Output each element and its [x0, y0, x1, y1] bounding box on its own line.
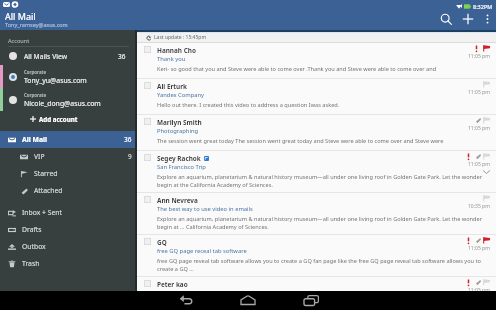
button[interactable]: Compose new mail [457, 9, 479, 29]
staticText: Inbox + Sent [22, 208, 135, 217]
button[interactable]: Add account [0, 111, 135, 127]
staticText: Marilyn Smith [157, 118, 202, 127]
staticText: GQ [157, 238, 167, 247]
staticText: 11:05 pm [468, 161, 490, 168]
button[interactable]: Hannah Cho [137, 43, 496, 79]
button[interactable]: Drafts [0, 221, 135, 238]
staticText: All Mails View [24, 52, 118, 61]
button[interactable]: Trash [0, 255, 135, 272]
staticText: 11:05 pm [468, 125, 490, 132]
staticText: Segey Rachok [157, 154, 201, 163]
button[interactable]: Home [228, 291, 268, 310]
staticText: free GQ page reveal tab software allows … [157, 257, 492, 273]
button[interactable]: VIP [0, 148, 135, 165]
staticText: Keri- so good that you and Steve were ab… [157, 65, 450, 73]
staticText: Starred [34, 169, 135, 178]
staticText: free GQ page receal tab software [157, 247, 247, 257]
staticText: Attached [34, 186, 135, 195]
button[interactable]: Attached [0, 182, 135, 199]
staticText: Drafts [22, 225, 135, 234]
button[interactable]: Search [435, 9, 457, 29]
button[interactable]: All Mails View [0, 47, 135, 65]
staticText: 36 [124, 135, 132, 144]
staticText: Ann Nevreva [157, 196, 198, 205]
staticText: Trash [22, 259, 135, 268]
staticText: Photographing [157, 127, 199, 137]
staticText: Peter kao [157, 280, 188, 289]
staticText: All Mail [5, 10, 36, 22]
staticText: Nicole_dong@asus.com [24, 99, 101, 108]
staticText: 11:05 pm [468, 245, 490, 252]
button[interactable]: Ali Erturk [137, 79, 496, 115]
staticText: Tony_ramsey@asus.com [5, 21, 68, 28]
button[interactable]: Ann Nevreva [137, 193, 496, 235]
staticText: Hello out there. I created this video to… [157, 101, 340, 109]
button[interactable]: Inbox + Sent [0, 204, 135, 221]
staticText: 11:05 pm [468, 53, 490, 60]
button[interactable]: All Mail [0, 131, 135, 148]
staticText: All Mail [22, 135, 124, 144]
staticText: 36 [118, 52, 126, 61]
staticText: Ali Erturk [157, 82, 188, 91]
button[interactable]: Peter kao [137, 277, 496, 291]
staticText: 11:05 pm [468, 287, 490, 291]
staticText: Corporate [24, 92, 47, 98]
staticText: Outbox [22, 242, 135, 251]
staticText: Yandex Company [157, 91, 205, 101]
staticText: Tony_yu@asus.com [24, 76, 87, 85]
staticText: 9 [128, 152, 132, 161]
staticText: Explore an aquarium, planetarium & natur… [157, 173, 492, 189]
button[interactable]: Back [166, 291, 206, 310]
button[interactable]: Recent apps [290, 291, 330, 310]
staticText: Corporate [24, 69, 47, 75]
staticText: VIP [34, 152, 128, 161]
button[interactable]: Corporate [0, 88, 135, 111]
staticText: Last update : 15:45pm [154, 34, 207, 41]
staticText: Hannah Cho [157, 46, 196, 55]
button[interactable]: More options [479, 9, 496, 29]
button[interactable]: Starred [0, 165, 135, 182]
staticText: 10:35 pm [468, 203, 490, 210]
staticText: Account [8, 37, 30, 45]
button[interactable]: Outbox [0, 238, 135, 255]
staticText: Add account [39, 115, 78, 123]
staticText: 11:05 pm [468, 89, 490, 96]
button[interactable]: GQ [137, 235, 496, 277]
staticText: Thank you [157, 55, 186, 65]
button[interactable]: Marilyn Smith [137, 115, 496, 151]
staticText: 8:32PM [473, 3, 493, 10]
button[interactable]: Corporate [0, 65, 135, 88]
button[interactable]: Segey Rachok [137, 151, 496, 193]
staticText: Explore an aquarium, planetarium & natur… [157, 215, 492, 231]
staticText: The session went great today The session… [157, 137, 450, 145]
staticText: The best way to use video in emails [157, 205, 253, 215]
staticText: San Francisco Trip [157, 163, 206, 173]
